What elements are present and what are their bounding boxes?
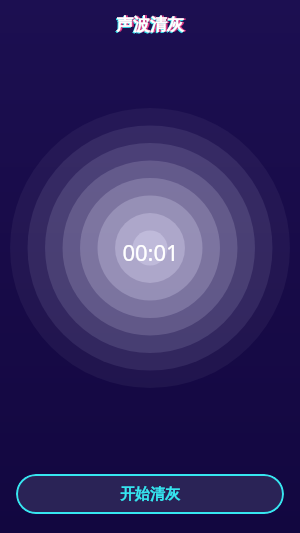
staticText: 声波清灰 (116, 14, 184, 35)
staticText: 开始清灰 (120, 485, 180, 504)
staticText: 声波清灰 (115, 15, 183, 36)
staticText: 声波清灰 (118, 14, 186, 35)
button[interactable]: 开始清灰 (16, 474, 284, 514)
staticText: 00:01 (122, 237, 179, 267)
